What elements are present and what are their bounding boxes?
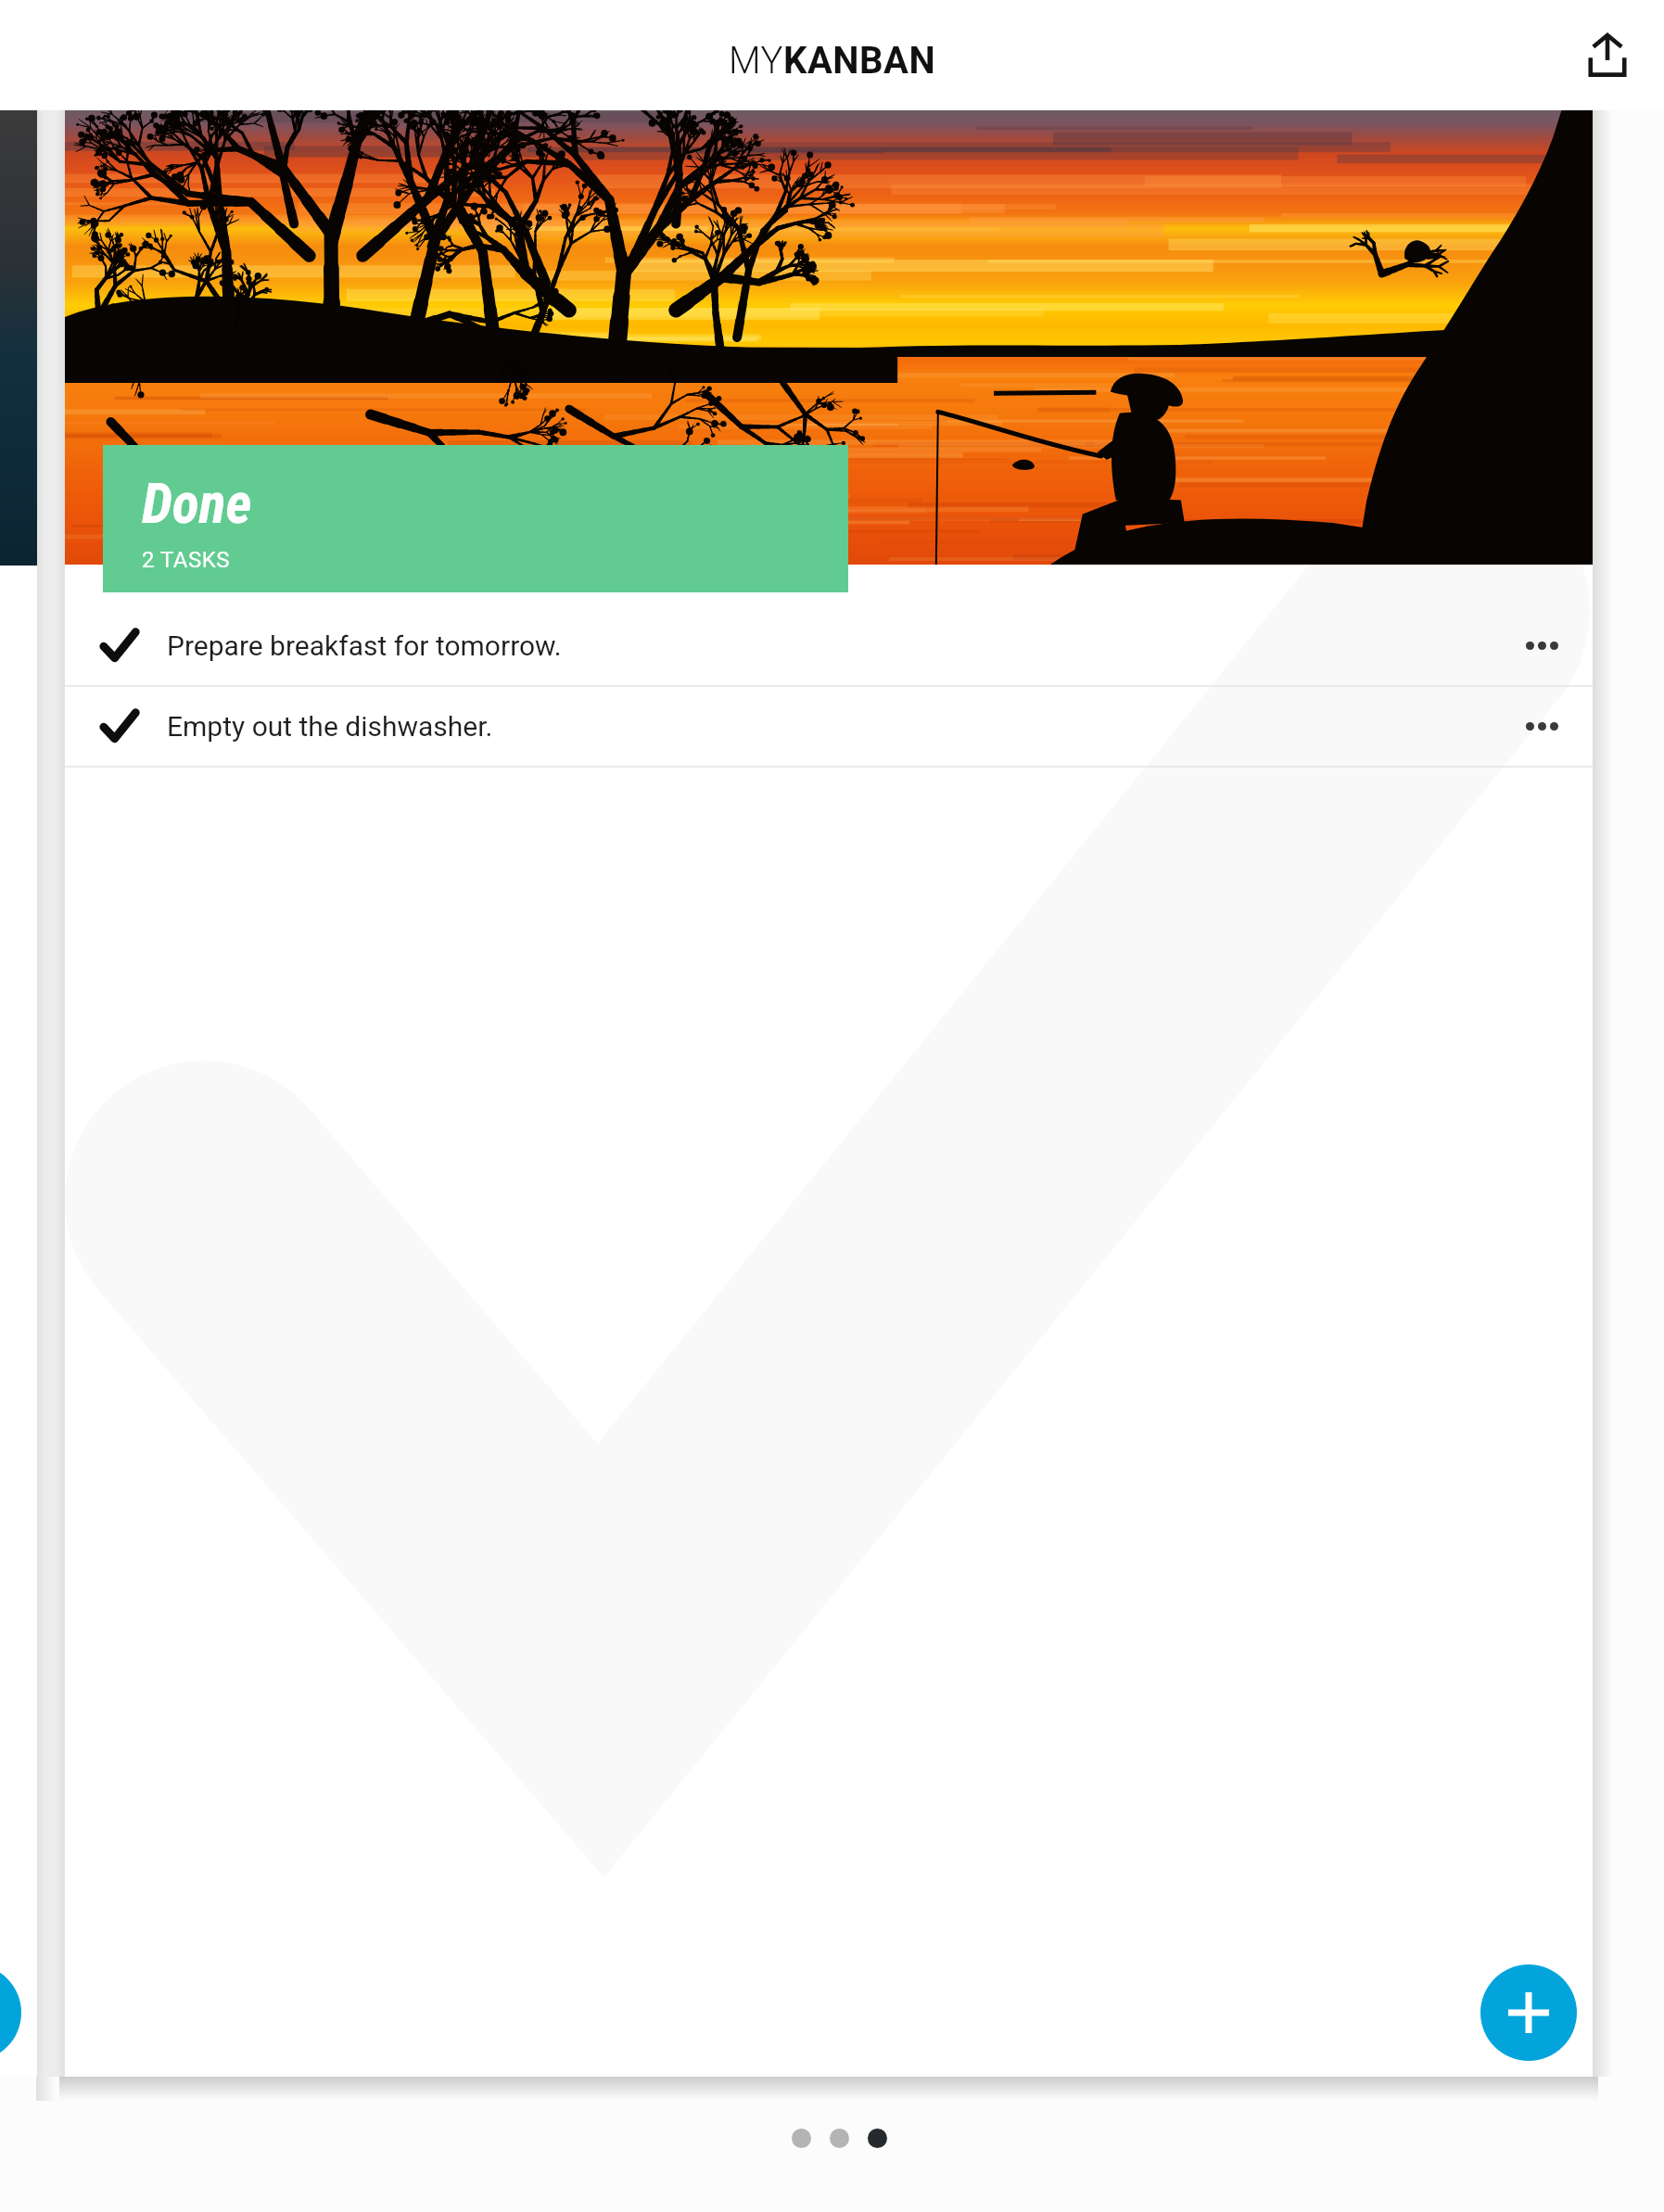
button[interactable]: Prepare breakfast for tomorrow. — [65, 606, 1593, 685]
staticText: 2 TASKS — [142, 547, 231, 573]
button[interactable]: More options — [1501, 606, 1582, 685]
button[interactable]: Page 1 — [782, 2119, 819, 2156]
button[interactable]: Page 3, selected — [858, 2119, 896, 2156]
staticText: MYKANBAN — [729, 39, 936, 83]
staticText: Done — [142, 471, 252, 536]
button[interactable]: More options — [1501, 687, 1582, 766]
button[interactable]: Add task — [1480, 1964, 1577, 2061]
button[interactable]: Page 2 — [820, 2119, 857, 2156]
button[interactable]: Done — [103, 445, 848, 592]
button[interactable]: Empty out the dishwasher. — [65, 687, 1593, 766]
button[interactable]: Add task to previous board — [0, 1964, 21, 2061]
staticText: Empty out the dishwasher. — [167, 710, 493, 743]
button[interactable]: Share — [1571, 19, 1644, 91]
staticText: Prepare breakfast for tomorrow. — [167, 629, 562, 662]
